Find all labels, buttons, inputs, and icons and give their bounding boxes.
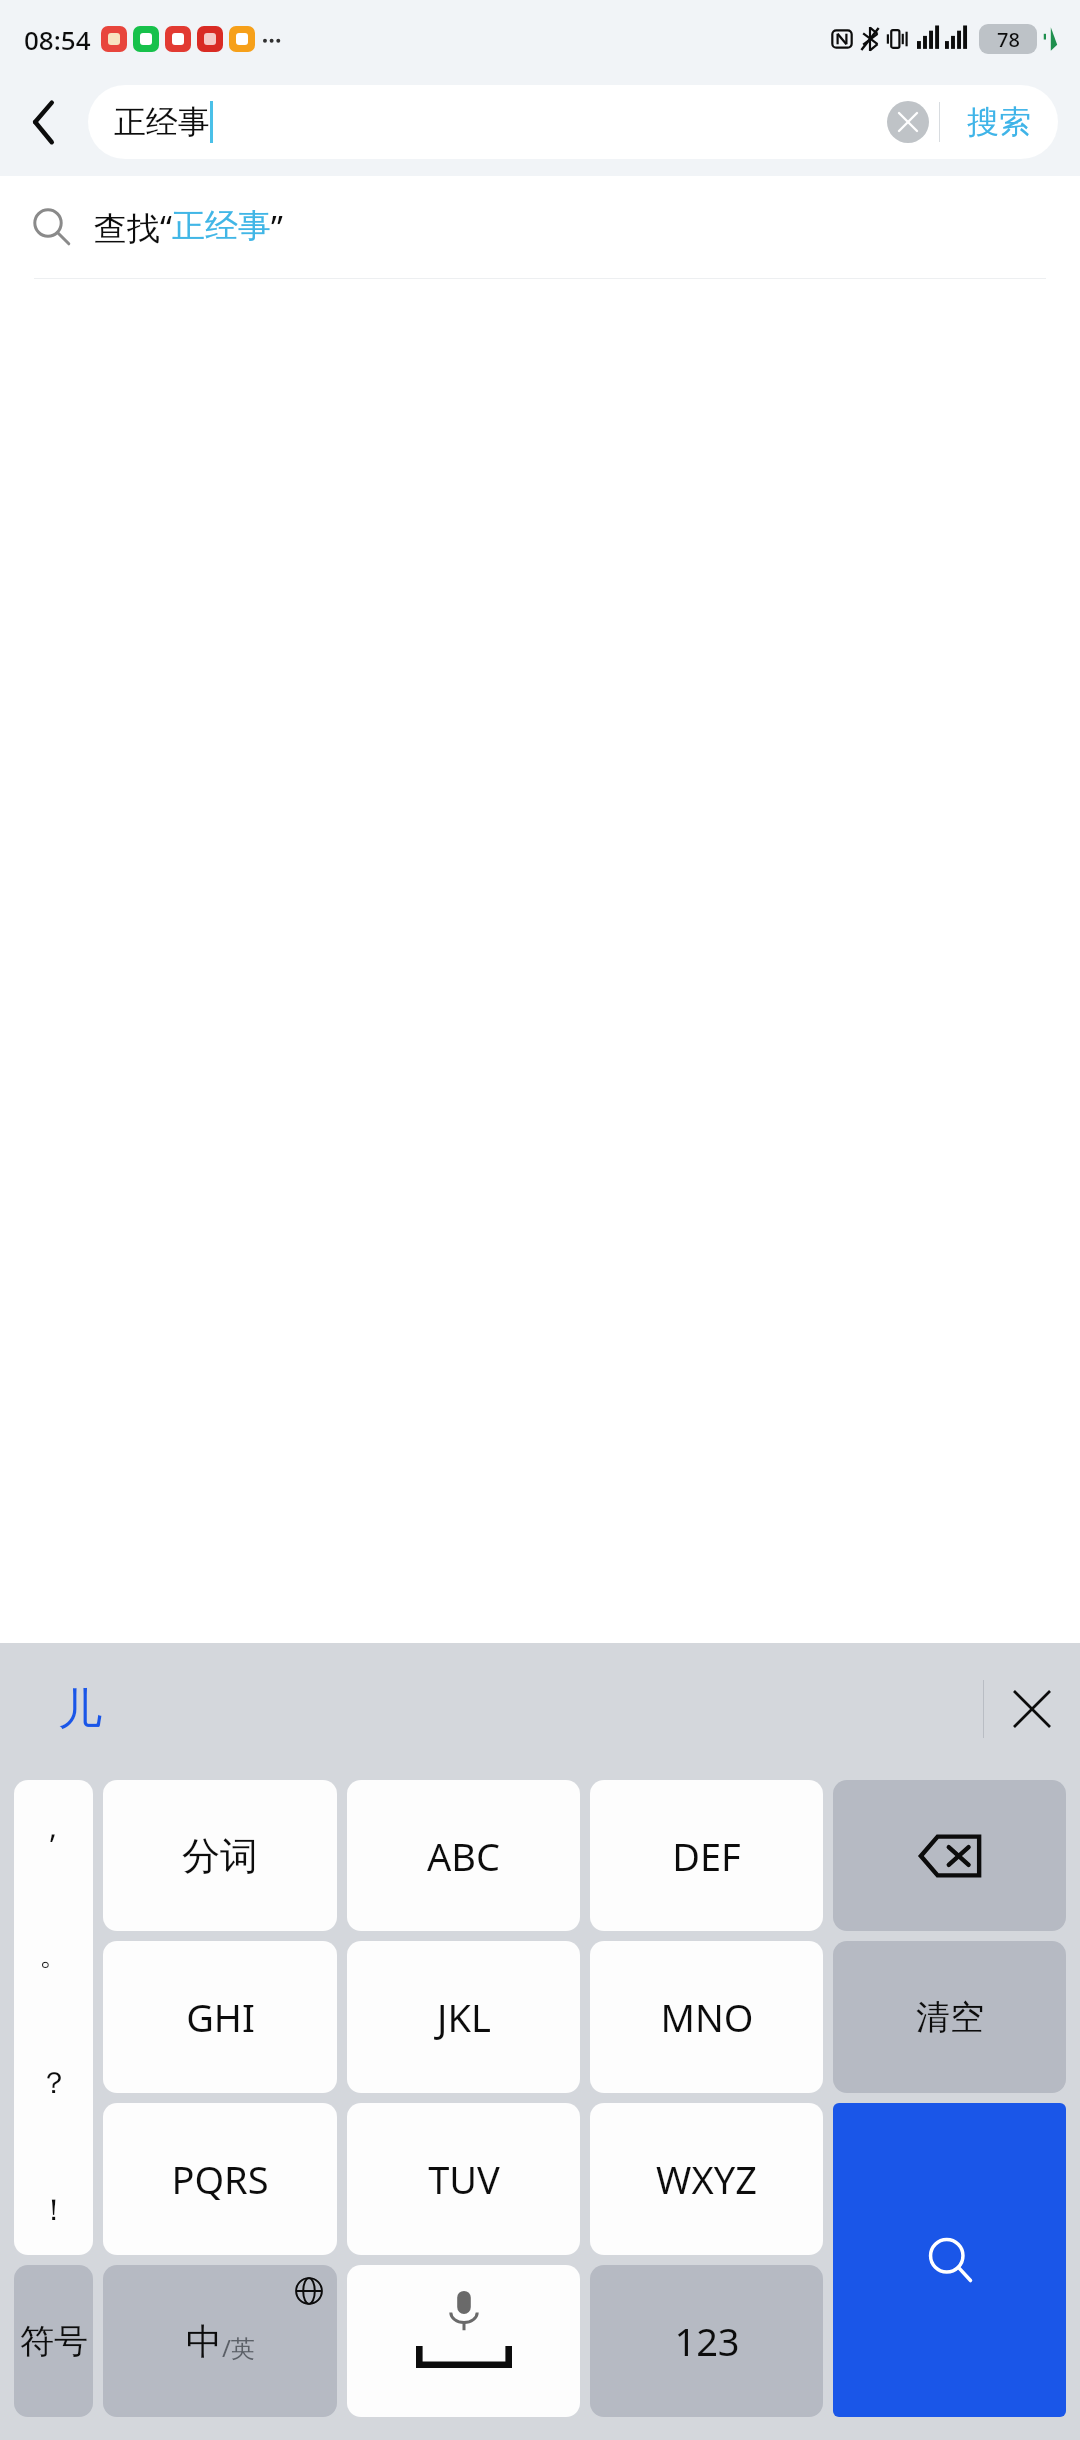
staticText: , [49,1806,58,1847]
button[interactable]: 中 [103,2265,337,2417]
staticText: 123 [674,2315,740,2367]
staticText: 清空 [916,1996,984,2039]
staticText: 。 [39,1936,69,1974]
button[interactable]: Voice input [347,2265,580,2417]
button[interactable]: TUV [347,2103,580,2255]
button[interactable]: Close keyboard [984,1643,1080,1775]
button[interactable]: Back [0,78,88,166]
staticText: PQRS [171,2153,269,2205]
staticText: ？ [39,2064,69,2102]
staticText: ” [271,205,283,250]
staticText: 正经事 [114,102,210,142]
button[interactable]: ABC [347,1780,580,1931]
staticText: ！ [39,2191,69,2229]
button[interactable]: Clear [877,91,939,153]
staticText: 08:54 [24,22,91,57]
button[interactable]: MNO [590,1941,823,2093]
button[interactable]: PQRS [103,2103,337,2255]
staticText: JKL [437,1991,491,2043]
staticText: 中 [186,2319,222,2364]
staticText: 查找“ [94,205,172,250]
staticText: 正经事 [172,205,271,247]
button[interactable]: 123 [590,2265,823,2417]
button[interactable]: GHI [103,1941,337,2093]
staticText: WXYZ [656,2153,757,2205]
button[interactable]: WXYZ [590,2103,823,2255]
staticText: 78 [997,26,1020,53]
button[interactable]: Punctuation [14,1780,93,2255]
button[interactable]: 正经事 [88,85,1058,159]
button[interactable]: 搜索 [940,85,1058,159]
staticText: 符号 [20,2320,88,2363]
button[interactable]: Search [833,2103,1066,2417]
staticText: DEF [672,1830,741,1882]
staticText: 分词 [182,1832,258,1880]
button[interactable]: 分词 [103,1780,337,1931]
staticText: /英 [222,2331,255,2364]
button[interactable]: Backspace [833,1780,1066,1931]
staticText: ABC [427,1830,500,1882]
staticText: 搜索 [967,102,1031,142]
button[interactable]: DEF [590,1780,823,1931]
button[interactable]: 查找“ [0,176,1080,278]
button[interactable]: JKL [347,1941,580,2093]
staticText: TUV [428,2153,500,2205]
button[interactable]: 符号 [14,2265,93,2417]
staticText: GHI [186,1991,255,2043]
staticText: 儿 [58,1682,102,1737]
staticText: MNO [660,1991,754,2043]
button[interactable]: 儿 [58,1682,102,1737]
button[interactable]: 清空 [833,1941,1066,2093]
